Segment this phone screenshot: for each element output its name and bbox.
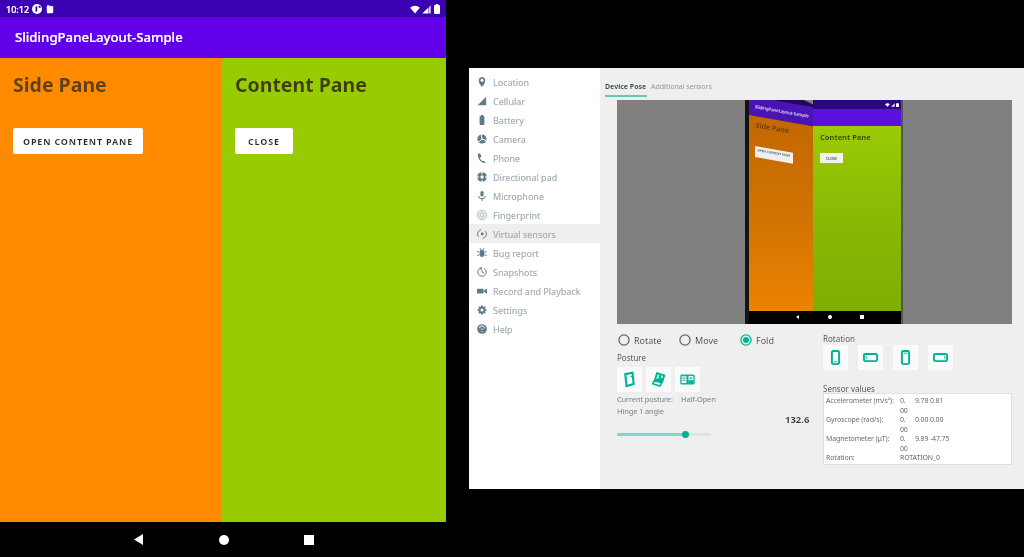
button[interactable]: Additional sensors <box>651 82 712 92</box>
staticText: Half-Open <box>681 394 716 404</box>
staticText: 0. 00 <box>900 415 908 435</box>
button[interactable]: Fingerprint <box>469 205 600 224</box>
staticText: 0. 00 <box>900 396 908 416</box>
staticText: Rotation <box>823 333 855 344</box>
staticText: SlidingPaneLayout-Sample <box>15 28 183 46</box>
staticText: Location <box>493 76 530 88</box>
staticText: 0.00 0.00 <box>915 415 944 425</box>
staticText: Battery <box>493 114 524 126</box>
button[interactable]: Directional pad <box>469 167 600 186</box>
button[interactable]: Settings <box>469 300 600 319</box>
button[interactable]: Rotation 2 <box>893 345 918 370</box>
button[interactable]: Rotation 1 <box>858 345 883 370</box>
staticText: Accelerometer (m/s²): <box>826 396 894 406</box>
staticText: CLOSE <box>248 135 280 147</box>
staticText: Settings <box>493 304 528 316</box>
button[interactable]: Fold <box>740 334 774 346</box>
staticText: Current posture: <box>617 394 673 404</box>
button[interactable]: Rotate <box>618 334 662 346</box>
staticText: Camera <box>493 133 526 145</box>
button[interactable]: Home <box>181 522 266 557</box>
staticText: Content Pane <box>235 71 367 98</box>
button[interactable]: Posture 1 <box>646 367 671 392</box>
staticText: OPEN CONTENT PANE <box>757 148 791 158</box>
button[interactable]: Location <box>469 72 600 91</box>
button[interactable]: Move <box>679 334 719 346</box>
button[interactable]: Cellular <box>469 91 600 110</box>
staticText: Side Pane <box>13 71 107 98</box>
staticText: SlidingPaneLayout-Sample <box>754 103 810 119</box>
button[interactable]: OPEN CONTENT PANE <box>13 128 143 154</box>
staticText: ROTATION_0 <box>900 453 940 463</box>
staticText: Help <box>493 323 513 335</box>
staticText: Virtual sensors <box>493 228 556 240</box>
button[interactable]: Posture 0 <box>617 367 642 392</box>
staticText: Bug report <box>493 247 539 259</box>
staticText: Move <box>695 334 719 346</box>
staticText: Rotate <box>634 334 662 346</box>
staticText: 132.6 <box>785 413 810 426</box>
staticText: Fold <box>756 334 774 346</box>
staticText: Directional pad <box>493 171 558 183</box>
button[interactable]: CLOSE <box>235 128 293 154</box>
button[interactable]: Battery <box>469 110 600 129</box>
button[interactable]: Rotation 0 <box>823 345 848 370</box>
button[interactable]: Help <box>469 319 600 338</box>
staticText: Posture <box>617 352 646 363</box>
button[interactable]: Phone <box>469 148 600 167</box>
staticText: OPEN CONTENT PANE <box>23 135 134 147</box>
staticText: 9.89 -47.75 <box>915 434 950 444</box>
button[interactable]: Recents <box>266 522 351 557</box>
staticText: Phone <box>493 152 521 164</box>
button[interactable]: Camera <box>469 129 600 148</box>
staticText: 9.78 0.81 <box>915 396 944 406</box>
staticText: Side Pane <box>755 121 790 136</box>
staticText: Snapshots <box>493 266 537 278</box>
staticText: Gyroscope (rad/s): <box>826 415 884 425</box>
button[interactable]: Snapshots <box>469 262 600 281</box>
button[interactable]: Back <box>96 522 181 557</box>
button[interactable]: Hinge angle <box>682 431 689 438</box>
staticText: Rotation: <box>826 453 855 463</box>
button[interactable]: Rotation 3 <box>928 345 953 370</box>
button[interactable]: Record and Playback <box>469 281 600 300</box>
staticText: 0. 00 <box>900 434 908 454</box>
staticText: Record and Playback <box>493 285 581 297</box>
button[interactable]: Device Pose <box>605 82 647 92</box>
staticText: Microphone <box>493 190 544 202</box>
button[interactable]: Microphone <box>469 186 600 205</box>
button[interactable]: Bug report <box>469 243 600 262</box>
button[interactable]: Posture 2 <box>675 367 700 392</box>
staticText: Cellular <box>493 95 526 107</box>
staticText: Fingerprint <box>493 209 541 221</box>
staticText: Sensor values <box>823 383 875 394</box>
staticText: CLOSE <box>826 156 838 161</box>
staticText: Hinge 1 angle <box>617 406 664 416</box>
staticText: 10:12 <box>6 3 30 15</box>
button[interactable]: Virtual sensors <box>469 224 600 243</box>
staticText: Magnetometer (μT): <box>826 434 890 444</box>
staticText: Content Pane <box>820 132 871 142</box>
